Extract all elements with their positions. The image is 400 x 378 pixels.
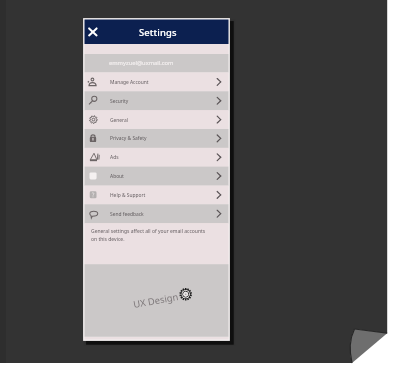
- staticText: Help & Support: [110, 192, 146, 199]
- button[interactable]: [85, 73, 229, 92]
- staticText: emmyzuel@uxmail.com: [109, 59, 174, 67]
- staticText: Security: [110, 98, 129, 105]
- button[interactable]: [85, 167, 229, 186]
- button[interactable]: [85, 54, 229, 73]
- button[interactable]: Close: [85, 22, 104, 41]
- staticText: Ads: [110, 154, 119, 161]
- button[interactable]: [85, 110, 229, 129]
- button[interactable]: [85, 204, 229, 223]
- button[interactable]: [85, 185, 229, 204]
- staticText: Settings: [139, 26, 177, 39]
- staticText: General settings affect all of your emai…: [91, 228, 206, 242]
- staticText: Manage Account: [110, 79, 149, 86]
- staticText: General: [110, 117, 129, 124]
- button[interactable]: [85, 148, 229, 167]
- staticText: Privacy & Safety: [110, 135, 147, 142]
- button[interactable]: [85, 129, 229, 148]
- staticText: UX Design: [132, 290, 180, 311]
- staticText: About: [110, 173, 124, 180]
- button[interactable]: [85, 91, 229, 110]
- staticText: Send feedback: [110, 211, 144, 218]
